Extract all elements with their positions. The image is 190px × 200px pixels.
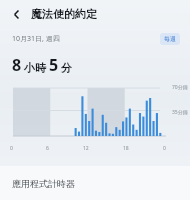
staticText: 10月31日, 週四 [12, 34, 60, 44]
staticText: 8 [12, 54, 22, 76]
button[interactable]: 每週 [160, 33, 180, 45]
staticText: 5 [49, 54, 59, 76]
staticText: 應用程式計時器 [12, 178, 75, 189]
staticText: 70分鐘 [172, 84, 188, 91]
staticText: 魔法使的約定 [31, 7, 97, 21]
staticText: 0 [10, 145, 13, 152]
staticText: 35分鐘 [172, 109, 188, 116]
button[interactable]: 應用程式計時器 [0, 166, 190, 200]
staticText: 6 [46, 145, 49, 152]
staticText: 12 [83, 145, 89, 152]
staticText: 18 [123, 145, 129, 152]
staticText: 小時 [24, 61, 46, 75]
button[interactable]: Back [5, 3, 27, 25]
staticText: 每週 [164, 35, 176, 43]
staticText: 分 [61, 61, 72, 75]
staticText: 0 [163, 145, 166, 152]
